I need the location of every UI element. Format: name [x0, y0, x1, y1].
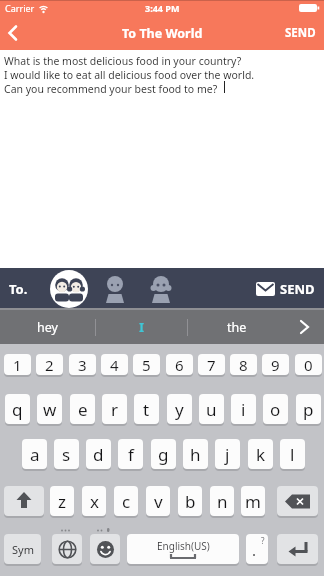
- button[interactable]: q: [5, 394, 30, 424]
- staticText: x: [90, 490, 99, 513]
- staticText: m: [245, 490, 261, 513]
- staticText: What is the most delicious food in your …: [4, 54, 255, 96]
- button[interactable]: [285, 310, 324, 344]
- staticText: q: [12, 398, 23, 421]
- staticText: hey: [37, 319, 58, 336]
- staticText: i: [241, 398, 246, 421]
- button[interactable]: g: [151, 439, 176, 469]
- staticText: I: [139, 318, 145, 336]
- staticText: 9: [271, 355, 280, 375]
- button[interactable]: 1: [4, 354, 31, 375]
- button[interactable]: 2: [36, 354, 63, 375]
- button[interactable]: 5: [133, 354, 160, 375]
- button[interactable]: Sym: [4, 534, 41, 564]
- staticText: w: [43, 398, 57, 421]
- button[interactable]: v: [146, 486, 170, 516]
- button[interactable]: u: [199, 394, 224, 424]
- button[interactable]: [277, 534, 318, 564]
- button[interactable]: SEND: [256, 280, 315, 298]
- button[interactable]: hey: [0, 310, 95, 344]
- button[interactable]: the: [188, 310, 285, 344]
- button[interactable]: 3: [69, 354, 96, 375]
- staticText: 5: [142, 355, 151, 375]
- button[interactable]: a: [22, 439, 47, 469]
- staticText: b: [185, 490, 196, 513]
- staticText: v: [154, 490, 163, 513]
- staticText: the: [227, 319, 247, 336]
- staticText: y: [175, 398, 184, 421]
- staticText: f: [128, 443, 134, 466]
- button[interactable]: h: [183, 439, 208, 469]
- button[interactable]: i: [231, 394, 256, 424]
- button[interactable]: 9: [262, 354, 289, 375]
- button[interactable]: l: [280, 439, 305, 469]
- button[interactable]: e: [70, 394, 95, 424]
- button[interactable]: [103, 275, 127, 303]
- button[interactable]: c: [114, 486, 138, 516]
- button[interactable]: z: [50, 486, 74, 516]
- button[interactable]: y: [167, 394, 192, 424]
- staticText: o: [270, 398, 281, 421]
- button[interactable]: [8, 25, 18, 41]
- button[interactable]: s: [54, 439, 79, 469]
- button[interactable]: English(US): [127, 534, 239, 564]
- button[interactable]: 7: [198, 354, 225, 375]
- button[interactable]: x: [82, 486, 106, 516]
- button[interactable]: r: [102, 394, 127, 424]
- button[interactable]: 8: [230, 354, 257, 375]
- staticText: a: [30, 443, 40, 466]
- button[interactable]: p: [296, 394, 321, 424]
- button[interactable]: I: [96, 310, 187, 344]
- button[interactable]: 0: [295, 354, 322, 375]
- staticText: 7: [207, 355, 216, 375]
- staticText: English(US): [157, 539, 210, 553]
- button[interactable]: SEND: [285, 25, 316, 41]
- staticText: p: [303, 398, 314, 421]
- staticText: r: [111, 398, 119, 421]
- staticText: u: [206, 398, 217, 421]
- staticText: .: [252, 540, 257, 560]
- staticText: k: [256, 443, 266, 466]
- staticText: Carrier: [5, 2, 35, 14]
- button[interactable]: f: [118, 439, 143, 469]
- button[interactable]: 4: [101, 354, 128, 375]
- staticText: h: [190, 443, 201, 466]
- staticText: 3:44 PM: [145, 2, 180, 14]
- staticText: n: [217, 490, 228, 513]
- staticText: s: [62, 443, 71, 466]
- staticText: 2: [45, 355, 54, 375]
- staticText: z: [58, 490, 66, 513]
- button[interactable]: [4, 486, 44, 516]
- staticText: g: [158, 443, 169, 466]
- staticText: Sym: [12, 542, 34, 557]
- button[interactable]: o: [263, 394, 288, 424]
- staticText: 6: [175, 355, 184, 375]
- staticText: 1: [13, 355, 22, 375]
- staticText: j: [225, 443, 230, 466]
- button[interactable]: b: [178, 486, 202, 516]
- staticText: 0: [304, 355, 313, 375]
- staticText: e: [78, 398, 88, 421]
- button[interactable]: k: [248, 439, 273, 469]
- button[interactable]: d: [86, 439, 111, 469]
- staticText: ?: [261, 535, 265, 546]
- button[interactable]: t: [134, 394, 159, 424]
- button[interactable]: m: [241, 486, 265, 516]
- button[interactable]: [149, 275, 173, 303]
- staticText: c: [122, 490, 131, 513]
- staticText: SEND: [280, 280, 315, 298]
- button[interactable]: [50, 270, 88, 308]
- staticText: 4: [110, 355, 119, 375]
- button[interactable]: n: [210, 486, 234, 516]
- staticText: d: [93, 443, 104, 466]
- button[interactable]: j: [215, 439, 240, 469]
- button[interactable]: [277, 486, 318, 516]
- button[interactable]: w: [37, 394, 62, 424]
- staticText: To The World: [122, 25, 203, 42]
- staticText: t: [143, 398, 150, 421]
- button[interactable]: .: [246, 534, 268, 564]
- staticText: 8: [239, 355, 248, 375]
- button[interactable]: [90, 534, 120, 564]
- button[interactable]: [52, 534, 82, 564]
- button[interactable]: 6: [166, 354, 193, 375]
